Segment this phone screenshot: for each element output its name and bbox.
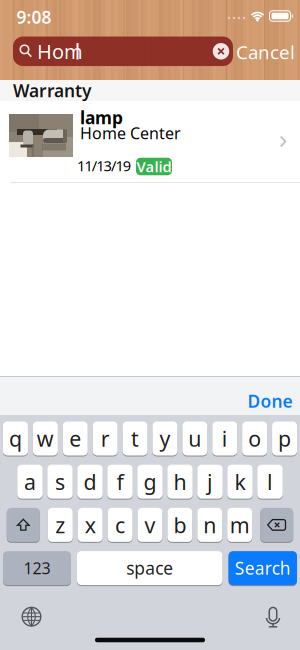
staticText: e <box>69 424 81 453</box>
staticText: v <box>144 511 155 539</box>
button[interactable]: u <box>182 420 207 456</box>
staticText: j <box>207 467 213 496</box>
button[interactable]: j <box>197 464 223 500</box>
staticText: c <box>115 511 125 539</box>
button[interactable]: lamp <box>0 101 300 183</box>
staticText: q <box>9 424 22 453</box>
staticText: x <box>85 511 96 539</box>
button[interactable]: Search <box>228 550 297 586</box>
button[interactable]: s <box>47 464 73 500</box>
button[interactable]: b <box>167 507 192 543</box>
button[interactable]: l <box>257 464 283 500</box>
staticText: Warranty <box>13 79 91 102</box>
staticText: Hom <box>37 38 83 65</box>
staticText: m <box>230 511 250 539</box>
button[interactable]: Clear text <box>213 43 229 59</box>
button[interactable]: Done <box>247 389 292 412</box>
button[interactable]: c <box>108 507 133 543</box>
button[interactable]: y <box>152 420 177 456</box>
button[interactable]: a <box>17 464 43 500</box>
staticText: p <box>278 424 291 453</box>
staticText: y <box>159 424 170 453</box>
staticText: i <box>222 424 228 453</box>
staticText: f <box>116 467 123 496</box>
button[interactable]: v <box>137 507 162 543</box>
button[interactable]: 123 <box>3 550 71 586</box>
button[interactable]: p <box>272 420 297 456</box>
staticText: w <box>37 424 54 453</box>
staticText: l <box>267 467 273 496</box>
staticText: Cancel <box>236 40 295 64</box>
staticText: space <box>126 557 173 580</box>
staticText: t <box>131 424 139 453</box>
button[interactable]: i <box>212 420 237 456</box>
staticText: o <box>248 424 261 453</box>
staticText: 123 <box>23 557 50 579</box>
button[interactable]: h <box>167 464 193 500</box>
button[interactable]: o <box>242 420 267 456</box>
button[interactable]: t <box>122 420 147 456</box>
staticText: d <box>83 467 96 496</box>
staticText: r <box>101 424 110 453</box>
button[interactable]: z <box>48 507 73 543</box>
button[interactable]: k <box>227 464 253 500</box>
staticText: z <box>55 511 65 539</box>
staticText: 9:08 <box>16 5 51 28</box>
staticText: h <box>173 467 186 496</box>
button[interactable]: w <box>33 420 58 456</box>
button[interactable]: g <box>137 464 163 500</box>
button[interactable]: e <box>63 420 88 456</box>
staticText: Home Center <box>80 122 181 144</box>
button[interactable]: Delete <box>260 507 293 543</box>
staticText: k <box>234 467 245 496</box>
staticText: u <box>188 424 201 453</box>
staticText: lamp <box>80 106 123 129</box>
button[interactable]: x <box>78 507 103 543</box>
staticText: 11/13/19 <box>77 156 131 175</box>
button[interactable]: f <box>107 464 133 500</box>
button[interactable]: Cancel <box>236 40 295 64</box>
button[interactable]: q <box>3 420 28 456</box>
staticText: g <box>143 467 156 496</box>
staticText: b <box>173 511 186 539</box>
button[interactable]: Next keyboard <box>21 607 41 627</box>
staticText: a <box>24 467 36 496</box>
button[interactable]: m <box>227 507 252 543</box>
button[interactable]: Shift <box>7 507 40 543</box>
staticText: Search <box>235 557 291 580</box>
button[interactable]: space <box>77 550 222 586</box>
button[interactable]: d <box>77 464 103 500</box>
staticText: Done <box>247 389 292 412</box>
button[interactable]: n <box>197 507 222 543</box>
staticText: n <box>203 511 216 539</box>
button[interactable]: r <box>93 420 118 456</box>
button[interactable]: Dictate <box>263 607 283 629</box>
staticText: s <box>55 467 65 496</box>
staticText: Valid <box>136 157 171 176</box>
